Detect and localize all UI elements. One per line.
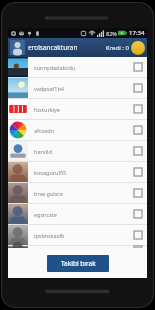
- button[interactable]: egsncste: [8, 204, 147, 224]
- staticText: egsncste: [34, 211, 134, 218]
- button[interactable]: Select mkjpsnsn: [134, 246, 142, 248]
- staticText: 17:34: [129, 29, 145, 37]
- button[interactable]: harvild: [8, 141, 147, 161]
- staticText: Takibi bırak: [61, 259, 96, 268]
- staticText: vadpsaf1b4: [34, 85, 134, 92]
- button[interactable]: ipsbnssasfb: [8, 225, 147, 245]
- staticText: erolsancakturan: [28, 43, 78, 52]
- staticText: harvild: [34, 148, 134, 155]
- button[interactable]: mkjpsnsn: [8, 246, 147, 248]
- button[interactable]: Takibi bırak: [47, 255, 109, 272]
- staticText: kovagurul55: [34, 169, 134, 176]
- button[interactable]: Select sunnydadabcdu: [134, 63, 142, 71]
- button[interactable]: sunnydadabcdu: [8, 57, 147, 77]
- staticText: foxturkiye: [34, 106, 134, 113]
- button[interactable]: foxturkiye: [8, 99, 147, 119]
- button[interactable]: Select foxturkiye: [134, 105, 142, 113]
- button[interactable]: Select bnw gulsra: [134, 189, 142, 197]
- button[interactable]: kovagurul55: [8, 162, 147, 182]
- staticText: bnw gulsra: [34, 190, 134, 197]
- button[interactable]: afcsedn: [8, 120, 147, 140]
- button[interactable]: Select afcsedn: [134, 126, 142, 134]
- staticText: mkjpsnsn: [34, 246, 134, 248]
- button[interactable]: Select vadpsaf1b4: [134, 84, 142, 92]
- staticText: afcsedn: [34, 127, 134, 134]
- staticText: Kredi : 0: [106, 44, 129, 52]
- button[interactable]: Profile photo: [10, 40, 25, 55]
- button[interactable]: vadpsaf1b4: [8, 78, 147, 98]
- button[interactable]: Select ipsbnssasfb: [134, 231, 142, 239]
- button[interactable]: bnw gulsra: [8, 183, 147, 203]
- staticText: ipsbnssasfb: [34, 232, 134, 239]
- button[interactable]: Select harvild: [134, 147, 142, 155]
- button[interactable]: Select kovagurul55: [134, 168, 142, 176]
- button[interactable]: Select egsncste: [134, 210, 142, 218]
- staticText: sunnydadabcdu: [34, 64, 134, 71]
- button[interactable]: Credits: [131, 41, 145, 55]
- staticText: 82%: [106, 30, 117, 37]
